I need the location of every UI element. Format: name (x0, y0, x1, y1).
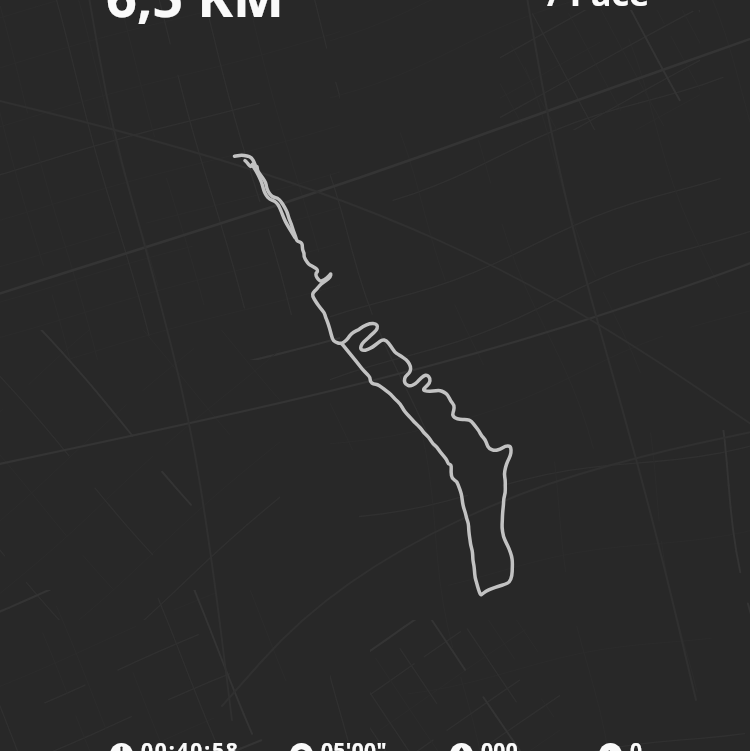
button[interactable]: 6,5 KM (106, 0, 284, 33)
button[interactable]: Elevation (599, 743, 622, 751)
button[interactable]: / Pace (547, 0, 650, 16)
button[interactable]: Calories (450, 743, 473, 751)
button[interactable]: Duration (110, 743, 133, 751)
staticText: 00:40:58 (141, 736, 240, 751)
button[interactable]: Average pace (290, 743, 313, 751)
staticText: 05'00" (321, 736, 387, 751)
staticText: 000 (481, 736, 519, 751)
staticText: 0 (630, 736, 643, 751)
